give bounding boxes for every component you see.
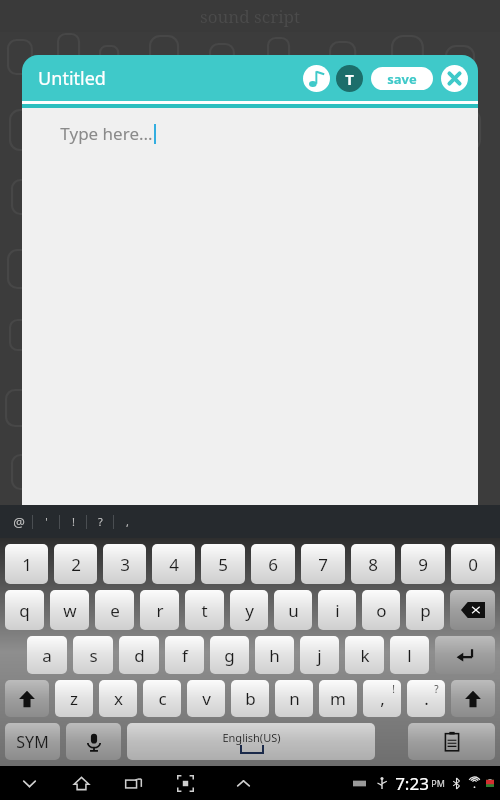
button[interactable]: j — [300, 636, 339, 674]
button[interactable]: ' — [33, 505, 59, 538]
button[interactable]: i — [318, 590, 356, 630]
staticText: e — [110, 599, 120, 622]
button[interactable]: Voice input — [66, 723, 121, 760]
button[interactable]: Expand — [228, 768, 258, 798]
staticText: 7:23 — [395, 772, 429, 795]
staticText: l — [407, 644, 412, 667]
staticText: w — [63, 599, 77, 622]
staticText: 1 — [22, 553, 32, 576]
button[interactable]: Record audio — [303, 65, 330, 92]
staticText: SYM — [16, 731, 49, 753]
staticText: Type here... — [60, 122, 153, 145]
staticText: English(US) — [222, 730, 281, 745]
button[interactable]: Type here... — [22, 108, 478, 505]
button[interactable]: . — [407, 680, 445, 717]
button[interactable]: k — [345, 636, 384, 674]
button[interactable]: 4 — [152, 544, 195, 584]
staticText: h — [269, 644, 280, 667]
button[interactable]: save — [371, 67, 433, 90]
staticText: 3 — [120, 553, 130, 576]
button[interactable]: Clipboard — [408, 723, 495, 760]
staticText: 5 — [218, 553, 228, 576]
button[interactable]: d — [119, 636, 159, 674]
staticText: s — [89, 644, 98, 667]
button[interactable]: 8 — [351, 544, 395, 584]
button[interactable]: SYM — [5, 723, 60, 760]
button[interactable]: Shift — [451, 680, 495, 717]
button[interactable]: v — [187, 680, 225, 717]
button[interactable]: Close — [441, 65, 468, 92]
staticText: 0 — [468, 553, 478, 576]
button[interactable]: b — [231, 680, 269, 717]
staticText: r — [156, 599, 164, 622]
button[interactable]: Backspace — [450, 590, 495, 630]
button[interactable]: Shift — [5, 680, 49, 717]
staticText: f — [182, 644, 188, 667]
button[interactable]: s — [73, 636, 113, 674]
staticText: a — [42, 644, 52, 667]
button[interactable]: 2 — [54, 544, 97, 584]
button[interactable]: a — [27, 636, 67, 674]
button[interactable]: 7 — [301, 544, 345, 584]
button[interactable]: g — [210, 636, 249, 674]
staticText: 7 — [318, 553, 328, 576]
button[interactable]: r — [140, 590, 179, 630]
staticText: j — [317, 644, 322, 667]
button[interactable]: 5 — [201, 544, 245, 584]
button[interactable]: t — [185, 590, 224, 630]
button[interactable]: Screenshot — [170, 768, 200, 798]
button[interactable]: 1 — [5, 544, 48, 584]
button[interactable]: Recents — [118, 768, 148, 798]
button[interactable]: p — [406, 590, 444, 630]
button[interactable]: y — [230, 590, 268, 630]
staticText: sound script — [200, 5, 300, 28]
staticText: ! — [72, 514, 75, 529]
staticText: m — [330, 687, 346, 710]
button[interactable]: Home — [66, 768, 96, 798]
button[interactable]: x — [99, 680, 137, 717]
button[interactable]: o — [362, 590, 400, 630]
staticText: n — [289, 687, 300, 710]
button[interactable]: Text style — [336, 65, 363, 92]
button[interactable]: l — [390, 636, 429, 674]
button[interactable]: w — [50, 590, 89, 630]
button[interactable]: c — [143, 680, 181, 717]
button[interactable]: Enter — [435, 636, 495, 674]
button[interactable]: 6 — [251, 544, 295, 584]
button[interactable]: z — [55, 680, 93, 717]
button[interactable]: Untitled — [38, 66, 303, 91]
button[interactable]: e — [95, 590, 134, 630]
staticText: ? — [434, 682, 439, 696]
button[interactable]: q — [5, 590, 44, 630]
staticText: v — [202, 687, 211, 710]
button[interactable]: 3 — [103, 544, 146, 584]
button[interactable]: , — [363, 680, 401, 717]
staticText: save — [387, 70, 417, 88]
staticText: 4 — [169, 553, 179, 576]
button[interactable]: Back — [14, 768, 44, 798]
button[interactable]: 0 — [451, 544, 495, 584]
staticText: T — [345, 69, 354, 89]
staticText: p — [420, 599, 431, 622]
staticText: x — [114, 687, 123, 710]
button[interactable]: 9 — [401, 544, 445, 584]
button[interactable]: u — [274, 590, 312, 630]
staticText: t — [201, 599, 208, 622]
button[interactable]: ! — [60, 505, 86, 538]
staticText: , — [380, 687, 385, 710]
staticText: g — [224, 644, 235, 667]
staticText: 8 — [368, 553, 378, 576]
staticText: 2 — [71, 553, 81, 576]
staticText: z — [70, 687, 78, 710]
button[interactable]: f — [165, 636, 204, 674]
button[interactable]: English(US) — [127, 723, 375, 760]
staticText: PM — [431, 777, 445, 789]
button[interactable]: n — [275, 680, 313, 717]
button[interactable]: m — [319, 680, 357, 717]
button[interactable]: @ — [6, 505, 32, 538]
staticText: q — [19, 599, 30, 622]
button[interactable]: ? — [87, 505, 113, 538]
button[interactable]: , — [114, 505, 140, 538]
staticText: , — [126, 514, 129, 529]
button[interactable]: h — [255, 636, 294, 674]
